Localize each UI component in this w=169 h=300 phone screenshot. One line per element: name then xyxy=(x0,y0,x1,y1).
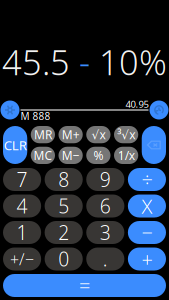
button[interactable]: M− xyxy=(58,147,83,164)
button[interactable]: 1/x xyxy=(114,147,138,164)
staticText: . xyxy=(103,246,108,272)
button[interactable]: 5 xyxy=(45,194,83,217)
button[interactable]: 7 xyxy=(3,168,41,191)
staticText: 10% xyxy=(99,39,167,85)
button[interactable]: MC xyxy=(31,147,55,164)
button[interactable]: 8 xyxy=(45,168,83,191)
staticText: MC xyxy=(33,147,52,163)
button[interactable]: + xyxy=(128,247,166,270)
staticText: MR xyxy=(34,127,52,143)
staticText: + xyxy=(141,246,152,272)
button[interactable]: X xyxy=(128,194,166,217)
button[interactable]: M+ xyxy=(58,126,83,143)
button[interactable]: 3 xyxy=(86,221,124,244)
button[interactable]: √x xyxy=(86,126,110,143)
button[interactable]: . xyxy=(86,247,124,270)
button[interactable]: CLR xyxy=(3,126,27,164)
staticText: ÷ xyxy=(141,166,152,193)
staticText: − xyxy=(141,219,152,246)
staticText: - xyxy=(79,39,99,85)
button[interactable]: 0 xyxy=(45,247,83,270)
button[interactable]: ÷ xyxy=(128,168,166,191)
staticText: = xyxy=(79,272,90,299)
button[interactable]: Delete xyxy=(142,126,166,164)
staticText: 4 xyxy=(17,193,28,219)
button[interactable]: − xyxy=(128,221,166,244)
button[interactable]: 2 xyxy=(45,221,83,244)
staticText: 2 xyxy=(58,220,69,245)
staticText: 40.95 xyxy=(125,97,148,110)
staticText: CLR xyxy=(4,136,27,154)
staticText: 1 xyxy=(17,220,28,245)
staticText: M− xyxy=(62,147,80,163)
staticText: 6 xyxy=(100,193,111,219)
staticText: √x xyxy=(91,127,105,143)
staticText: 8 xyxy=(58,167,69,192)
staticText: 5 xyxy=(58,193,69,219)
button[interactable]: ³√x xyxy=(114,126,138,143)
staticText: 1/x xyxy=(118,147,135,163)
staticText: 3 xyxy=(100,220,111,245)
staticText: % xyxy=(93,147,103,163)
button[interactable]: = xyxy=(3,274,166,297)
staticText: M 888 xyxy=(20,109,50,123)
button[interactable]: 1 xyxy=(3,221,41,244)
staticText: 45.5 xyxy=(2,39,79,85)
staticText: +/− xyxy=(10,248,34,270)
staticText: 0 xyxy=(58,246,69,272)
staticText: X xyxy=(141,193,152,219)
button[interactable]: 4 xyxy=(3,194,41,217)
button[interactable]: % xyxy=(86,147,110,164)
button[interactable]: History xyxy=(149,100,168,119)
button[interactable]: +/− xyxy=(3,247,41,270)
button[interactable]: 9 xyxy=(86,168,124,191)
button[interactable]: Settings xyxy=(0,100,19,119)
button[interactable]: 6 xyxy=(86,194,124,217)
staticText: ³√x xyxy=(117,127,135,143)
button[interactable]: MR xyxy=(31,126,55,143)
staticText: 7 xyxy=(17,167,28,192)
staticText: 9 xyxy=(100,167,111,192)
staticText: M+ xyxy=(62,127,80,143)
